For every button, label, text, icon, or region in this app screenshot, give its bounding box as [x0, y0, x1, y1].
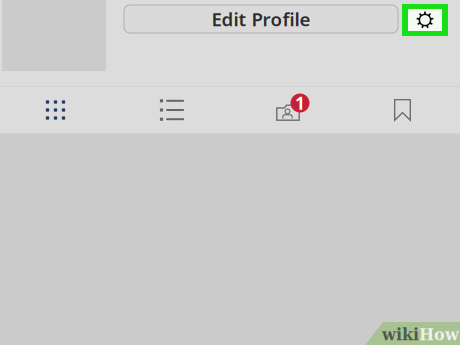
staticText: wiki [382, 325, 419, 344]
staticText: 1 [295, 91, 305, 114]
button[interactable]: List view [111, 87, 233, 132]
button[interactable]: Edit Profile [124, 5, 398, 33]
button[interactable]: Settings [402, 4, 448, 36]
button[interactable]: Tagged photos, 1 new [233, 87, 345, 132]
staticText: How [419, 325, 459, 344]
staticText: Edit Profile [211, 7, 310, 31]
button[interactable]: Grid view [0, 87, 111, 132]
button[interactable]: Saved [345, 87, 460, 132]
